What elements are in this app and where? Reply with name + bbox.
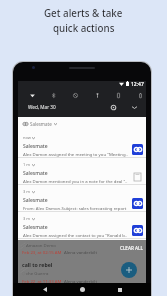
button[interactable]: Salesmate [23, 117, 146, 131]
staticText: Alex Damon assigned the meeting to you "… [23, 151, 128, 157]
staticText: Get alerts & take [44, 7, 123, 20]
staticText: 3 m [23, 216, 31, 221]
button[interactable]: Collapse [129, 102, 140, 113]
button[interactable]: Settings [108, 102, 119, 113]
button[interactable]: now [18, 131, 146, 158]
button[interactable]: Home [76, 283, 89, 296]
staticText: Alex Damon mentioned you in a note for t… [23, 178, 128, 184]
staticText: Feb 23, at 02:15 AM [22, 249, 62, 255]
button[interactable]: Bluetooth [48, 90, 58, 100]
button[interactable]: 3 m [18, 212, 146, 239]
staticText: Salesmate [23, 224, 48, 231]
button[interactable]: CLEAR ALL [118, 244, 145, 252]
staticText: Salesmate [23, 143, 48, 150]
button[interactable]: Recent apps [113, 283, 126, 296]
staticText: Feb 22, at 11:33 AM [22, 278, 62, 284]
staticText: CLEAR ALL [120, 245, 143, 251]
staticText: che Guerra [26, 270, 49, 276]
button[interactable]: Do not disturb [70, 90, 80, 100]
staticText: Salesmate [23, 197, 48, 204]
button[interactable]: 3 m [18, 185, 146, 212]
staticText: 3 m [23, 189, 31, 194]
staticText: Alena vanderbilt [64, 278, 97, 284]
button[interactable]: Flashlight [92, 90, 102, 100]
staticText: Alena vanderbilt [64, 249, 97, 255]
button[interactable]: Battery saver [135, 90, 145, 100]
button[interactable]: Add [121, 262, 137, 278]
staticText: call to rebel [22, 261, 53, 268]
button[interactable]: Wi-Fi [27, 90, 37, 100]
staticText: 1 m [23, 162, 31, 167]
staticText: Wed, Mar 30 [28, 104, 56, 110]
staticText: Salesmate [30, 121, 52, 127]
button[interactable]: Auto-rotate [113, 90, 123, 100]
button[interactable]: 1 m [18, 158, 146, 185]
button[interactable]: Back [38, 283, 51, 296]
staticText: quick actions [53, 22, 115, 35]
staticText: From: Alex Damon-Subject: sales forecast… [23, 205, 127, 211]
staticText: 12:47 [131, 81, 144, 86]
staticText: Salesmate [23, 170, 48, 177]
staticText: Alex Damon assigned the contact to you "… [23, 232, 128, 238]
staticText: now [23, 135, 31, 140]
button[interactable]: Amazon Demo [22, 242, 122, 255]
button[interactable]: call to rebel [22, 261, 122, 284]
staticText: Amazon Demo [26, 242, 56, 248]
